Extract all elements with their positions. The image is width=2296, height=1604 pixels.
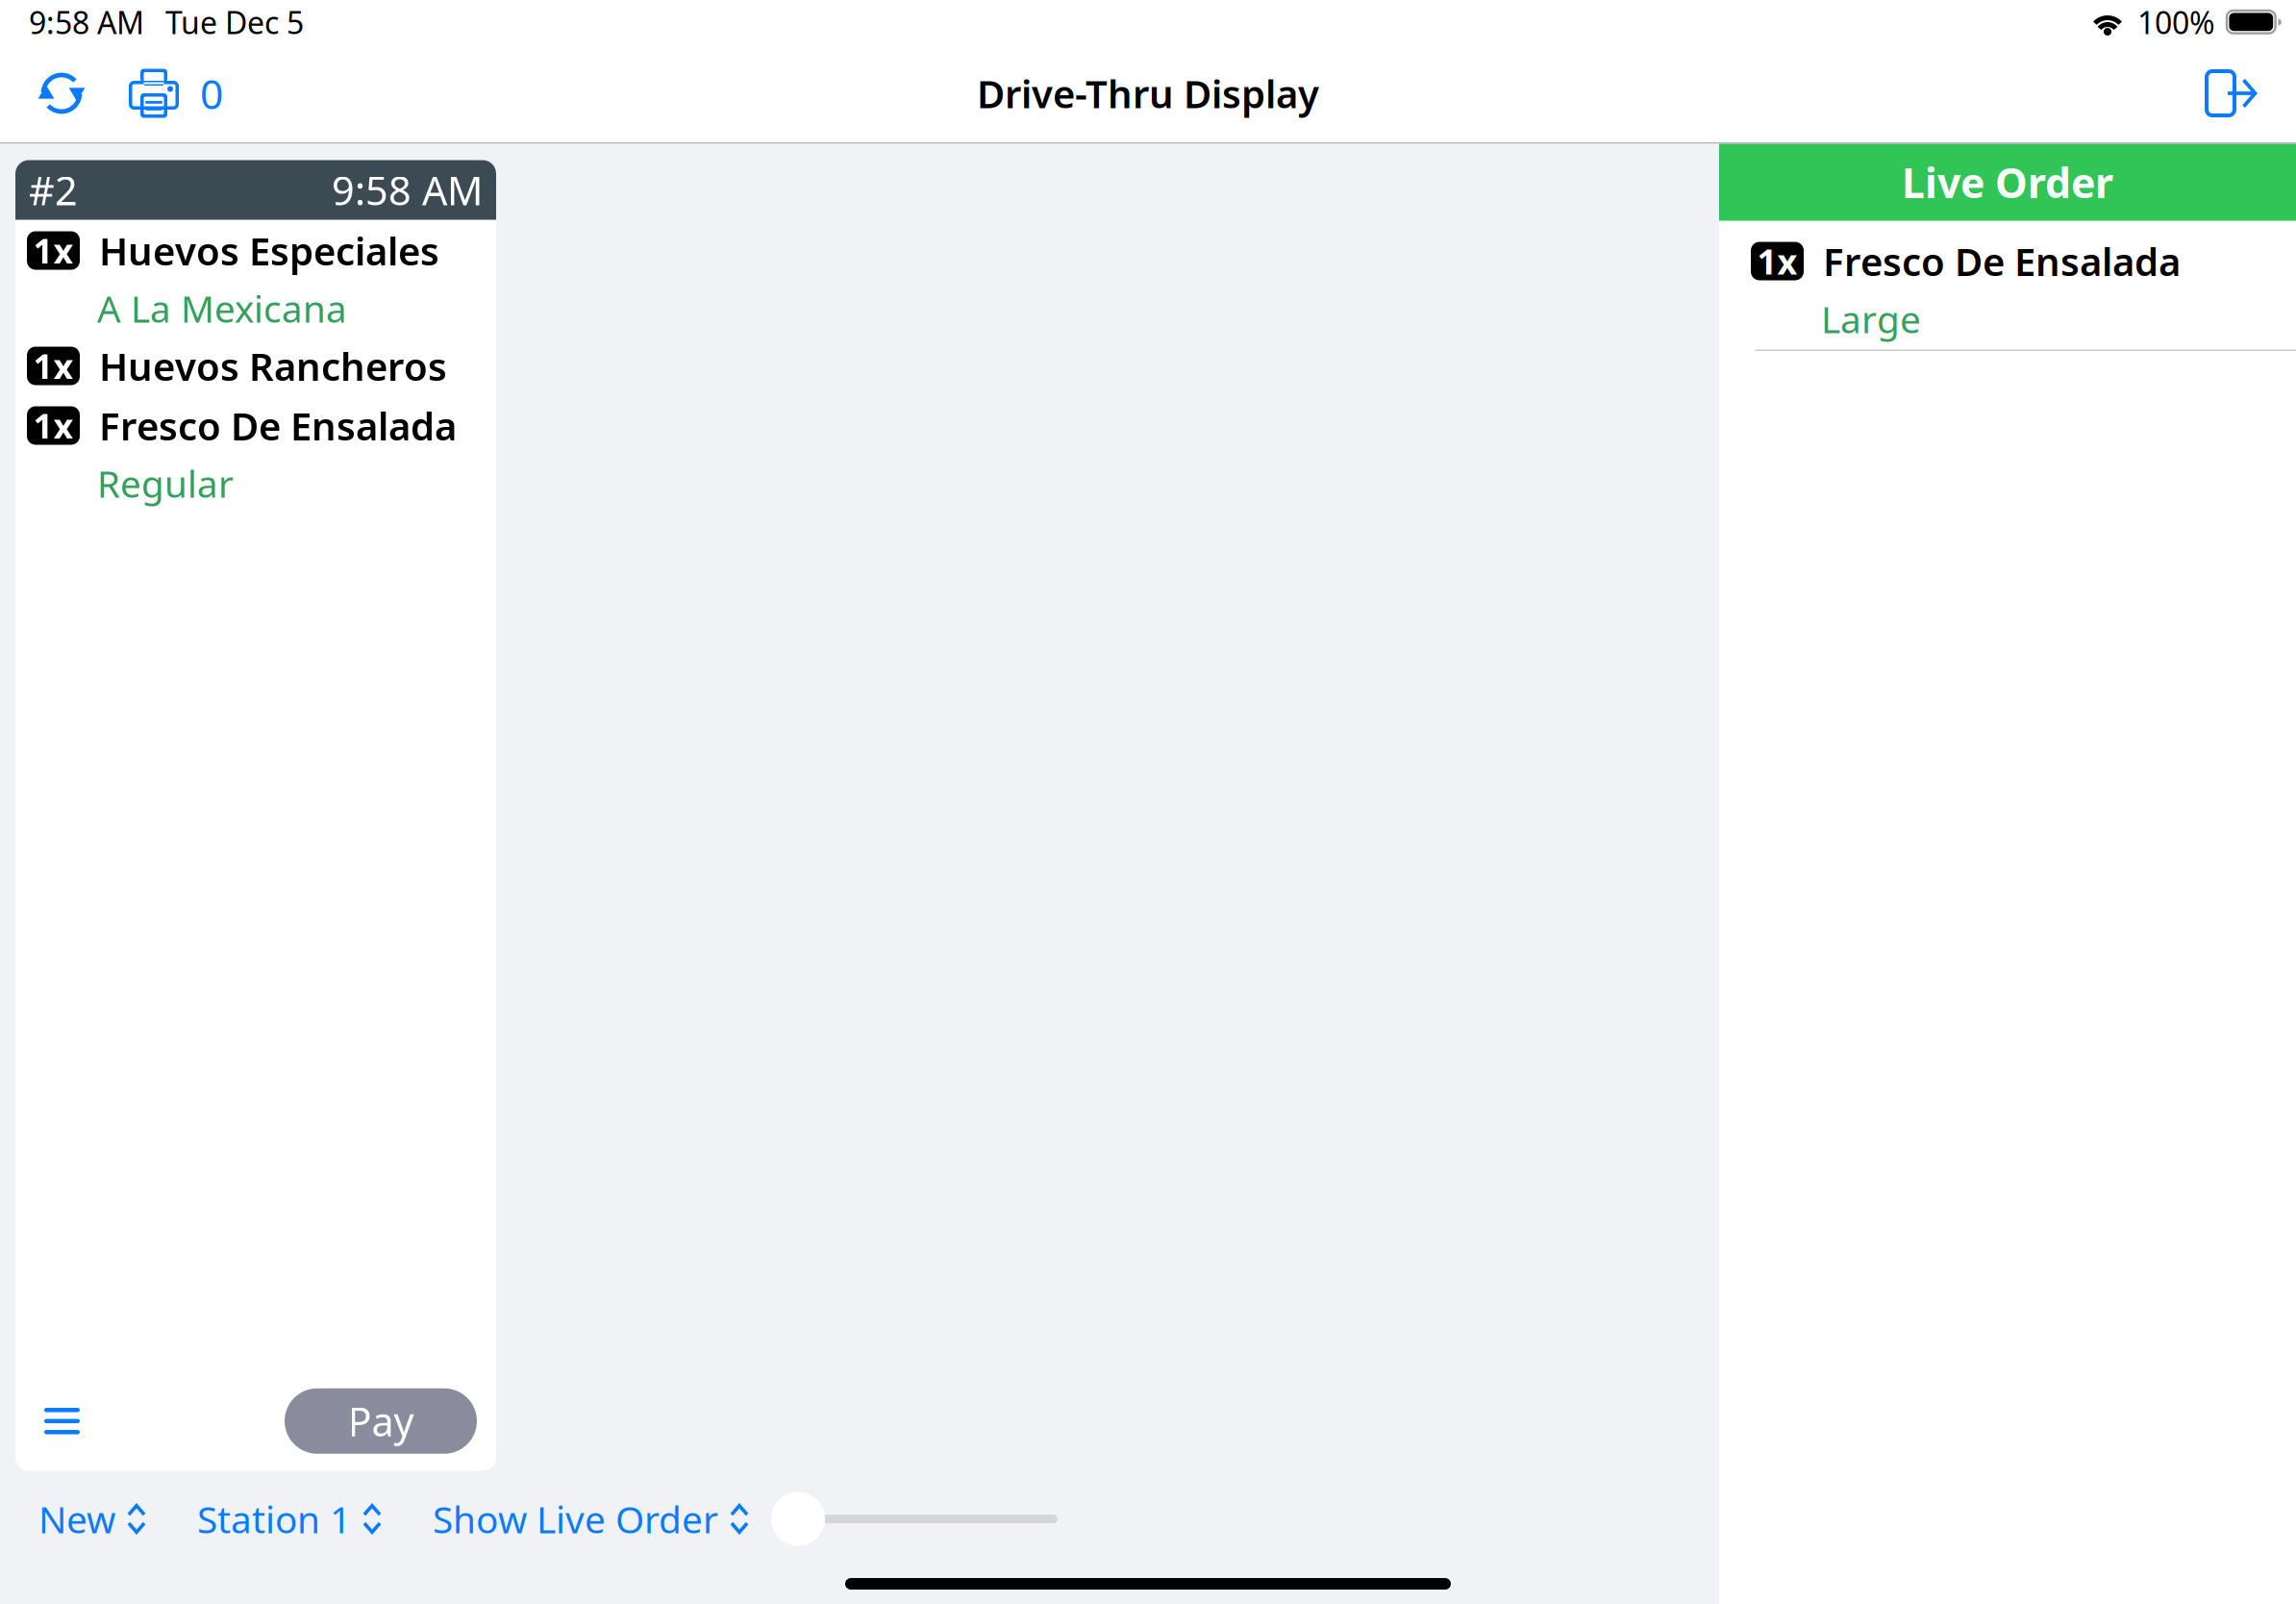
staticText: Regular (97, 459, 234, 508)
button[interactable]: Exit (2198, 55, 2265, 132)
button[interactable]: Show Live Order (433, 1481, 750, 1557)
staticText: New (38, 1494, 115, 1544)
staticText: #2 (29, 164, 78, 216)
staticText: Pay (348, 1395, 414, 1447)
staticText: 1x (1757, 238, 1797, 284)
button[interactable]: Refresh (29, 53, 94, 134)
staticText: Live Order (1902, 155, 2113, 210)
button[interactable]: Brightness (771, 1491, 1058, 1547)
button[interactable]: 1x (27, 336, 485, 396)
staticText: A La Mexicana (97, 283, 347, 333)
staticText: 1x (33, 403, 74, 449)
staticText: Station 1 (197, 1494, 351, 1544)
staticText: 100% (2137, 2, 2215, 43)
staticText: Huevos Especiales (99, 225, 439, 276)
staticText: Tue Dec 5 (165, 2, 304, 43)
button[interactable]: 1x (27, 221, 485, 336)
staticText: Fresco De Ensalada (1823, 236, 2181, 287)
button[interactable]: Print queue, 0 jobs (94, 55, 240, 132)
button[interactable]: Order actions (15, 1387, 100, 1455)
staticText: 1x (33, 228, 74, 273)
staticText: Fresco De Ensalada (99, 400, 457, 451)
button[interactable]: New (38, 1481, 147, 1557)
staticText: 0 (200, 66, 223, 121)
staticText: Large (1821, 294, 1921, 343)
staticText: Huevos Rancheros (99, 340, 447, 391)
staticText: 9:58 AM (29, 2, 144, 43)
button[interactable]: 1x (27, 396, 485, 511)
button[interactable]: Pay (285, 1388, 477, 1454)
button[interactable]: Station 1 (197, 1481, 383, 1557)
staticText: Drive-Thru Display (977, 68, 1319, 119)
staticText: Show Live Order (433, 1494, 718, 1544)
staticText: 9:58 AM (332, 164, 483, 216)
staticText: 1x (33, 343, 74, 389)
